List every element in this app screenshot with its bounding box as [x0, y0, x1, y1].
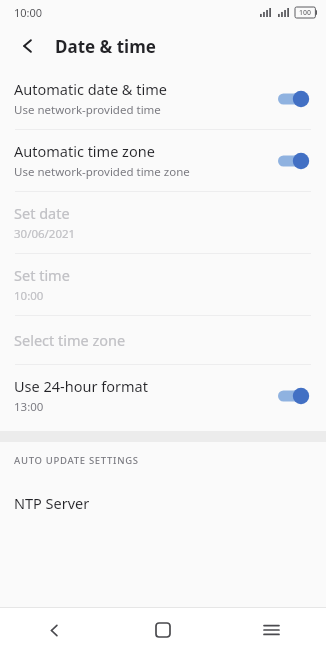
staticText: Date & time	[55, 35, 156, 58]
staticText: AUTO UPDATE SETTINGS	[14, 454, 139, 467]
button[interactable]: Use 24-hour format	[0, 365, 326, 426]
staticText: NTP Server	[14, 493, 90, 513]
staticText: Select time zone	[14, 330, 126, 350]
button[interactable]: Set time	[0, 254, 326, 315]
staticText: 10:00	[14, 5, 43, 20]
staticText: 30/06/2021	[14, 226, 76, 242]
button[interactable]: Toggle	[278, 151, 308, 171]
staticText: 10:00	[14, 288, 44, 304]
button[interactable]: Select time zone	[0, 316, 326, 364]
button[interactable]: Automatic date & time	[0, 68, 326, 129]
button[interactable]: Back	[0, 608, 108, 652]
button[interactable]: Recents	[217, 608, 326, 652]
staticText: Use network-provided time	[14, 102, 161, 118]
button[interactable]: NTP Server	[0, 479, 326, 527]
staticText: 13:00	[14, 399, 44, 415]
button[interactable]: Home	[108, 608, 217, 652]
button[interactable]: Back	[12, 30, 44, 62]
button[interactable]: Toggle	[278, 89, 308, 109]
staticText: Automatic time zone	[14, 141, 155, 161]
button[interactable]: Set date	[0, 192, 326, 253]
staticText: Set date	[14, 203, 70, 223]
button[interactable]: Automatic time zone	[0, 130, 326, 191]
staticText: Automatic date & time	[14, 79, 167, 99]
staticText: Use 24-hour format	[14, 376, 148, 396]
button[interactable]: Toggle	[278, 386, 308, 406]
staticText: Use network-provided time zone	[14, 164, 190, 180]
staticText: Set time	[14, 265, 70, 285]
staticText: 100	[299, 8, 312, 18]
